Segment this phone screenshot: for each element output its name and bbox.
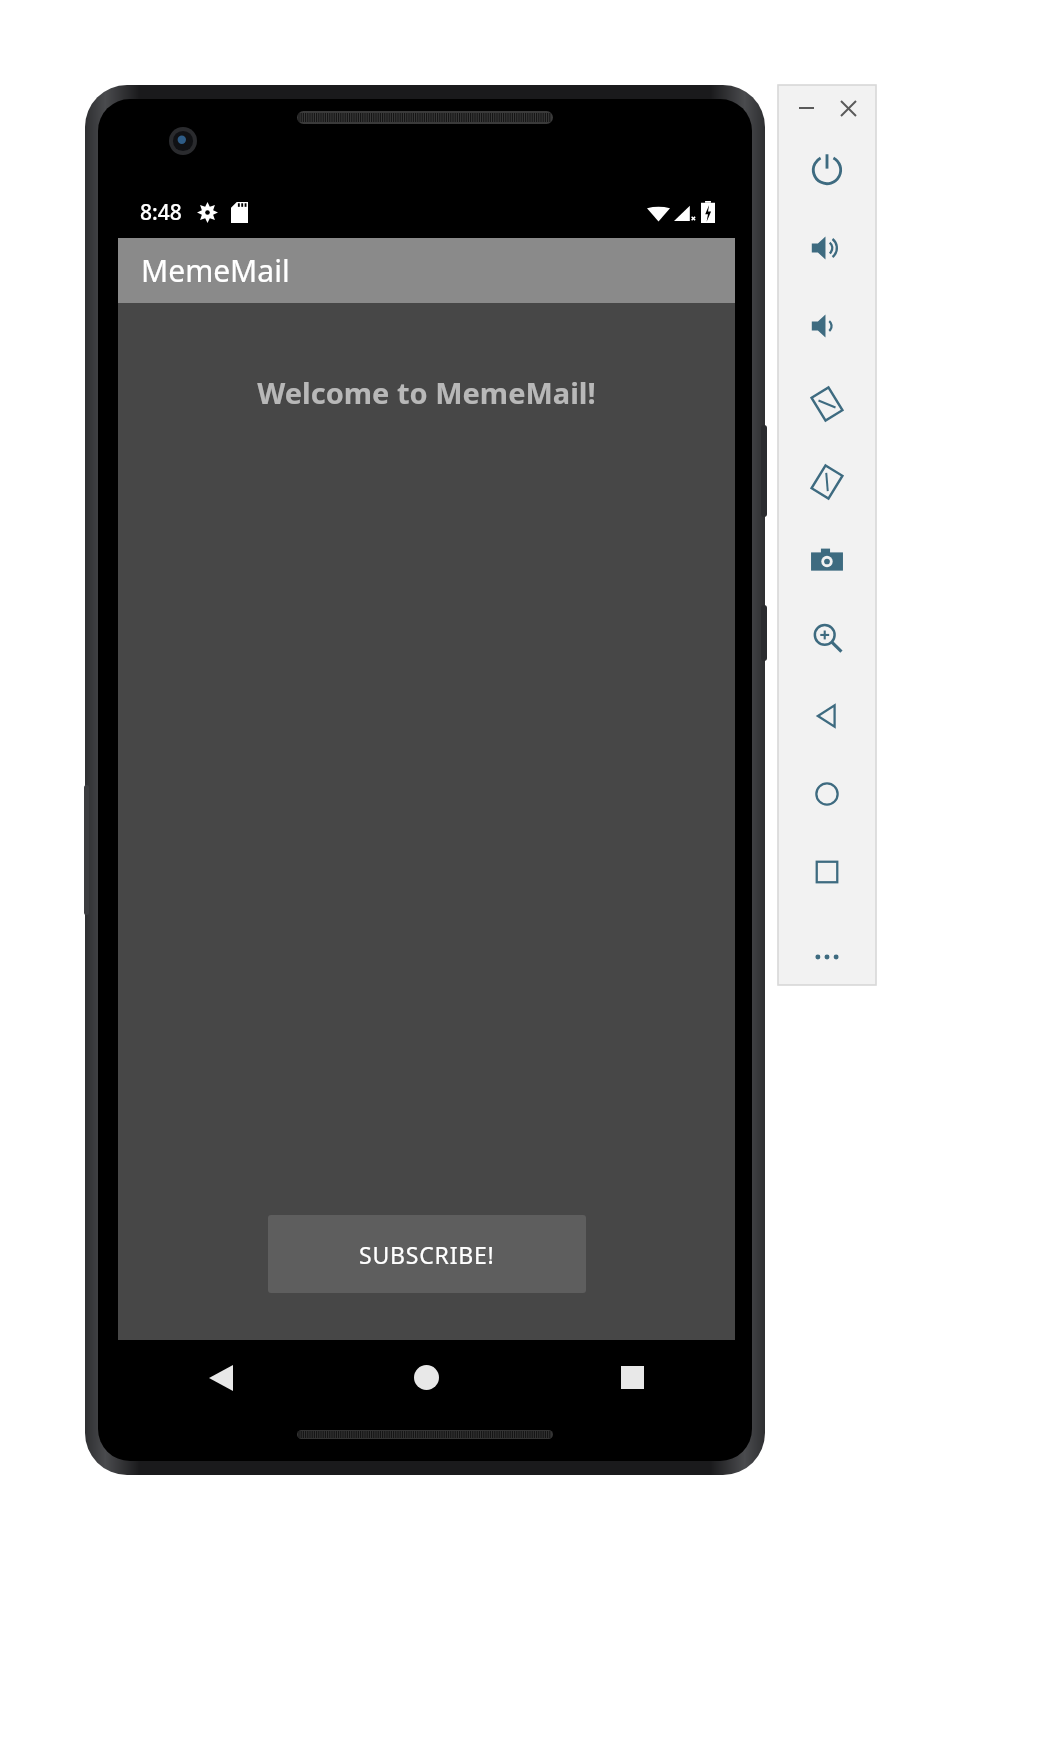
button[interactable]: Volume down: [778, 287, 876, 365]
button[interactable]: Overview: [778, 833, 876, 911]
staticText: SUBSCRIBE!: [359, 1239, 495, 1270]
button[interactable]: Zoom: [778, 599, 876, 677]
button[interactable]: Back: [778, 677, 876, 755]
button[interactable]: Rotate left: [778, 365, 876, 443]
button[interactable]: Volume up: [778, 209, 876, 287]
button[interactable]: Recent apps: [529, 1340, 735, 1415]
button[interactable]: Back: [118, 1340, 323, 1415]
button[interactable]: More: [778, 929, 876, 985]
button[interactable]: Home: [778, 755, 876, 833]
staticText: MemeMail: [141, 250, 290, 291]
button[interactable]: Rotate right: [778, 443, 876, 521]
staticText: 8:48: [140, 198, 182, 227]
button[interactable]: SUBSCRIBE!: [268, 1215, 586, 1293]
button[interactable]: Minimize: [793, 95, 819, 121]
staticText: Welcome to MemeMail!: [257, 373, 596, 412]
button[interactable]: Power: [778, 131, 876, 209]
button[interactable]: Take screenshot: [778, 521, 876, 599]
button[interactable]: Close: [835, 95, 861, 121]
button[interactable]: Home: [323, 1340, 529, 1415]
